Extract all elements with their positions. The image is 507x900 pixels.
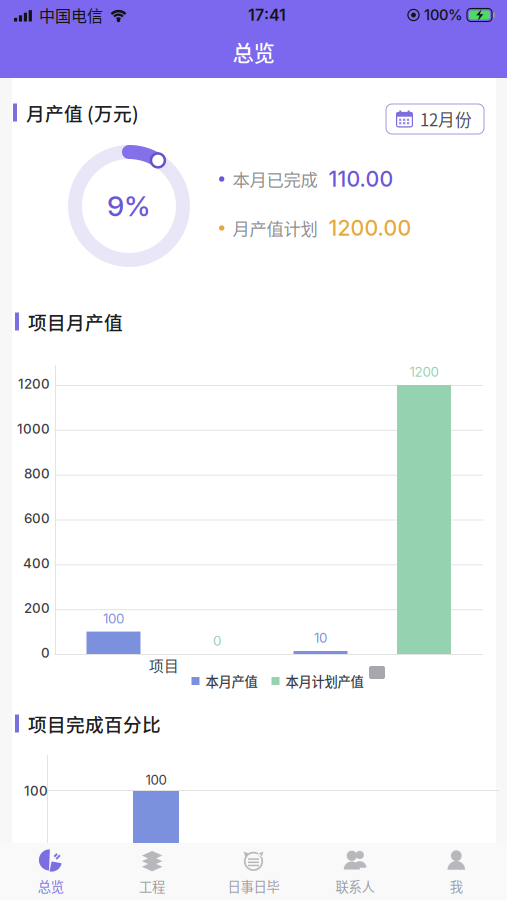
staticText: 本月计划产值: [285, 671, 363, 691]
staticText: 中国电信: [39, 3, 103, 27]
button[interactable]: 12月份: [386, 104, 484, 134]
staticText: 联系人: [335, 876, 374, 896]
staticText: 0: [213, 633, 221, 649]
staticText: 1000: [17, 421, 50, 437]
staticText: 12月份: [420, 107, 472, 131]
staticText: 月产值计划: [232, 215, 317, 241]
staticText: 总览: [38, 876, 64, 896]
button[interactable]: 工程: [101, 843, 203, 900]
staticText: 本月已完成: [232, 166, 317, 192]
staticText: 17:41: [248, 5, 286, 25]
staticText: 110.00: [328, 166, 393, 192]
staticText: 项目完成百分比: [28, 710, 161, 737]
staticText: 800: [24, 466, 50, 482]
staticText: 本月产值: [205, 671, 257, 691]
staticText: 9%: [107, 189, 151, 223]
button[interactable]: 联系人: [304, 843, 406, 900]
staticText: 项目月产值: [28, 308, 123, 335]
staticText: 400: [23, 555, 50, 571]
staticText: 0: [41, 645, 50, 661]
staticText: 200: [24, 600, 50, 616]
staticText: 100: [24, 783, 48, 799]
button[interactable]: 我: [406, 843, 507, 900]
button[interactable]: 总览: [0, 843, 101, 900]
staticText: 日事日毕: [227, 876, 279, 896]
staticText: 1200: [18, 376, 50, 392]
staticText: 我: [450, 876, 463, 896]
staticText: 项目: [149, 654, 179, 676]
staticText: 100%: [424, 6, 463, 24]
staticText: 1200.00: [328, 215, 411, 241]
button[interactable]: 日事日毕: [203, 843, 304, 900]
staticText: 600: [24, 510, 50, 526]
staticText: 100: [145, 772, 166, 788]
staticText: 工程: [139, 876, 165, 896]
staticText: 月产值 (万元): [26, 99, 139, 126]
staticText: 10: [314, 630, 327, 646]
staticText: 1200: [409, 364, 438, 380]
staticText: 100: [103, 610, 124, 627]
staticText: 总览: [232, 37, 274, 67]
